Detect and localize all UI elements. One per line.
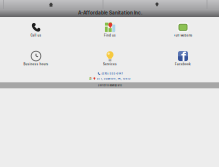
button[interactable]: Home xyxy=(39,0,63,9)
button[interactable]: Find us xyxy=(75,20,145,38)
button[interactable]: Switch to desktop site xyxy=(0,82,219,88)
staticText: Business hours xyxy=(23,63,48,66)
staticText: St 1, Scranton, PA, 15673 xyxy=(97,77,131,80)
button[interactable]: Full website xyxy=(148,20,218,38)
button[interactable]: St 1, Scranton, PA, 15673 xyxy=(89,77,131,81)
button[interactable]: f xyxy=(148,49,218,67)
button[interactable]: Business hours xyxy=(1,49,71,67)
staticText: Switch to desktop site xyxy=(97,84,121,87)
staticText: Facebook xyxy=(175,63,191,66)
button[interactable]: Location xyxy=(145,0,169,9)
staticText: A-Affordable Sanitation Inc. xyxy=(78,10,142,16)
button[interactable]: (570) 555-0147 xyxy=(98,72,122,76)
staticText: Full website xyxy=(173,34,192,37)
button[interactable]: Services xyxy=(75,49,145,67)
staticText: f xyxy=(181,49,186,64)
staticText: Find us xyxy=(104,34,116,37)
button[interactable]: Call us xyxy=(1,20,71,38)
staticText: (570) 555-0147 xyxy=(101,72,122,75)
staticText: Services xyxy=(103,63,117,66)
staticText: Call us xyxy=(30,34,41,37)
